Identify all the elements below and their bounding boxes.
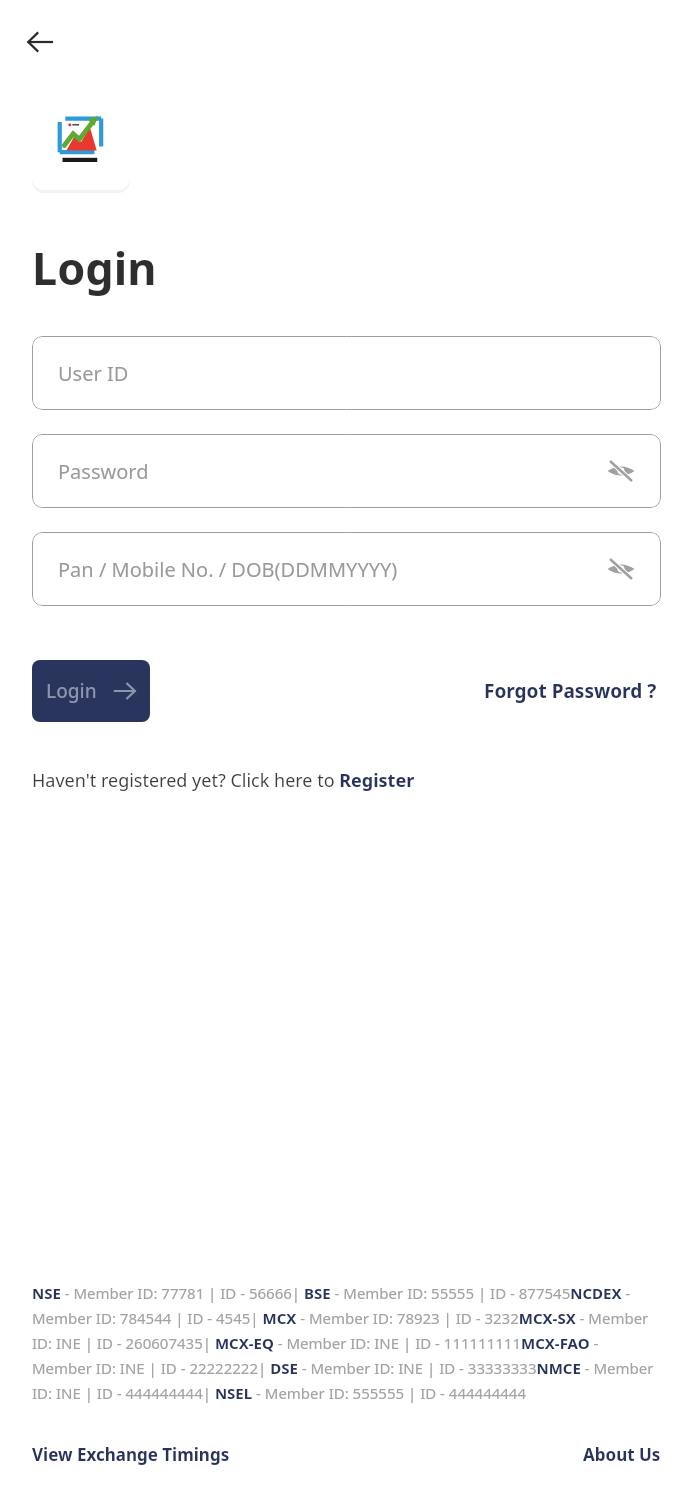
- button[interactable]: User ID: [32, 336, 661, 410]
- button[interactable]: Toggle password visibility: [601, 451, 641, 491]
- staticText: View Exchange Timings: [32, 1443, 230, 1466]
- staticText: Password: [58, 458, 601, 485]
- button[interactable]: Forgot Password ?: [480, 674, 661, 708]
- staticText: User ID: [58, 360, 641, 387]
- button[interactable]: Login: [32, 660, 150, 722]
- staticText: Forgot Password ?: [484, 678, 657, 704]
- button[interactable]: Haven't registered yet? Click here to Re…: [32, 768, 415, 793]
- staticText: NSE - Member ID: 77781 | ID - 56666| BSE…: [32, 1283, 661, 1403]
- staticText: Login: [32, 237, 157, 298]
- staticText: About Us: [583, 1443, 661, 1466]
- button[interactable]: Toggle password visibility: [601, 549, 641, 589]
- staticText: Login: [46, 678, 97, 704]
- staticText: Pan / Mobile No. / DOB(DDMMYYYY): [58, 556, 601, 583]
- button[interactable]: Back: [16, 18, 64, 66]
- button[interactable]: About Us: [583, 1439, 661, 1470]
- staticText: Haven't registered yet? Click here to Re…: [32, 768, 415, 793]
- button[interactable]: Pan / Mobile No. / DOB(DDMMYYYY): [32, 532, 661, 606]
- button[interactable]: Password: [32, 434, 661, 508]
- button[interactable]: View Exchange Timings: [32, 1439, 230, 1470]
